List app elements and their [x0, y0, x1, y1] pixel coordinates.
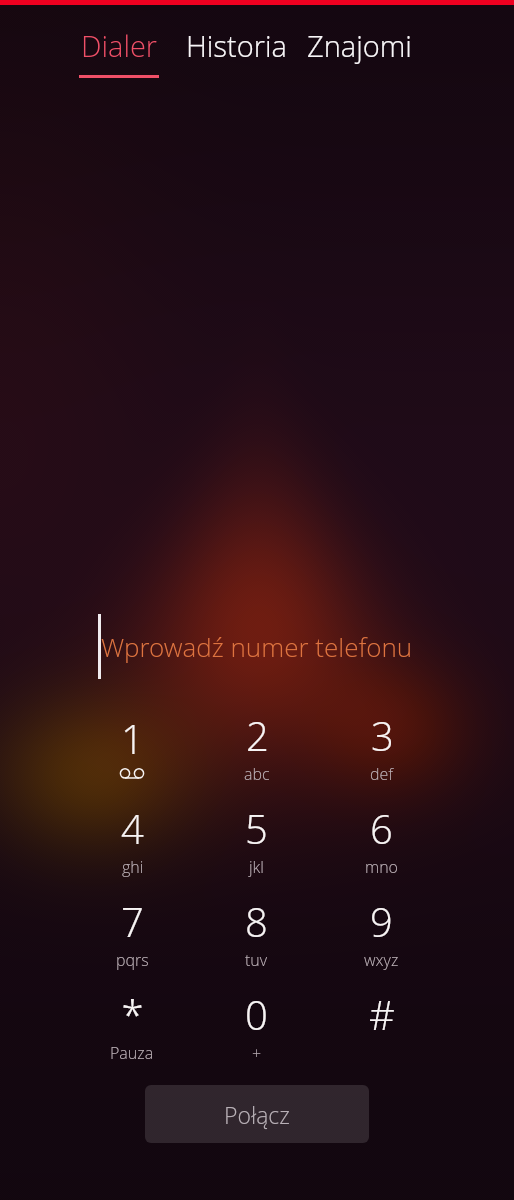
- staticText: 8: [245, 894, 268, 948]
- button[interactable]: *: [70, 979, 194, 1072]
- staticText: Znajomi: [307, 26, 412, 65]
- button[interactable]: 4: [70, 793, 194, 886]
- staticText: 1: [121, 711, 144, 765]
- staticText: Dialer: [81, 26, 158, 65]
- staticText: wxyz: [364, 949, 399, 971]
- staticText: pqrs: [116, 949, 149, 971]
- staticText: 6: [370, 801, 393, 855]
- staticText: ghi: [122, 856, 144, 878]
- staticText: 3: [371, 708, 394, 762]
- other: Voicemail: [117, 766, 147, 782]
- staticText: Historia: [186, 26, 287, 65]
- staticText: jkl: [249, 856, 264, 878]
- button[interactable]: Znajomi: [307, 26, 412, 75]
- button[interactable]: 7: [70, 886, 194, 979]
- staticText: def: [370, 763, 394, 785]
- staticText: 4: [121, 801, 144, 855]
- button[interactable]: 0: [194, 979, 319, 1072]
- staticText: Pauza: [110, 1042, 154, 1064]
- staticText: Połącz: [224, 1099, 290, 1130]
- staticText: *: [121, 987, 144, 1041]
- button[interactable]: 3: [319, 700, 444, 793]
- staticText: tuv: [245, 949, 268, 971]
- button[interactable]: Dialer: [79, 26, 159, 78]
- button[interactable]: Historia: [186, 26, 287, 75]
- button[interactable]: 1: [70, 700, 194, 793]
- button[interactable]: Połącz: [145, 1085, 369, 1143]
- button[interactable]: 5: [194, 793, 319, 886]
- staticText: Wprowadź numer telefonu: [101, 629, 413, 664]
- staticText: 9: [370, 894, 393, 948]
- button[interactable]: 8: [194, 886, 319, 979]
- staticText: 0: [245, 987, 268, 1041]
- staticText: abc: [244, 763, 270, 785]
- staticText: 2: [246, 708, 269, 762]
- staticText: +: [252, 1042, 262, 1064]
- staticText: 5: [245, 801, 268, 855]
- button[interactable]: 6: [319, 793, 444, 886]
- staticText: #: [369, 987, 395, 1041]
- button[interactable]: #: [319, 979, 444, 1072]
- staticText: mno: [365, 856, 398, 878]
- button[interactable]: 9: [319, 886, 444, 979]
- button[interactable]: 2: [194, 700, 319, 793]
- staticText: 7: [121, 894, 144, 948]
